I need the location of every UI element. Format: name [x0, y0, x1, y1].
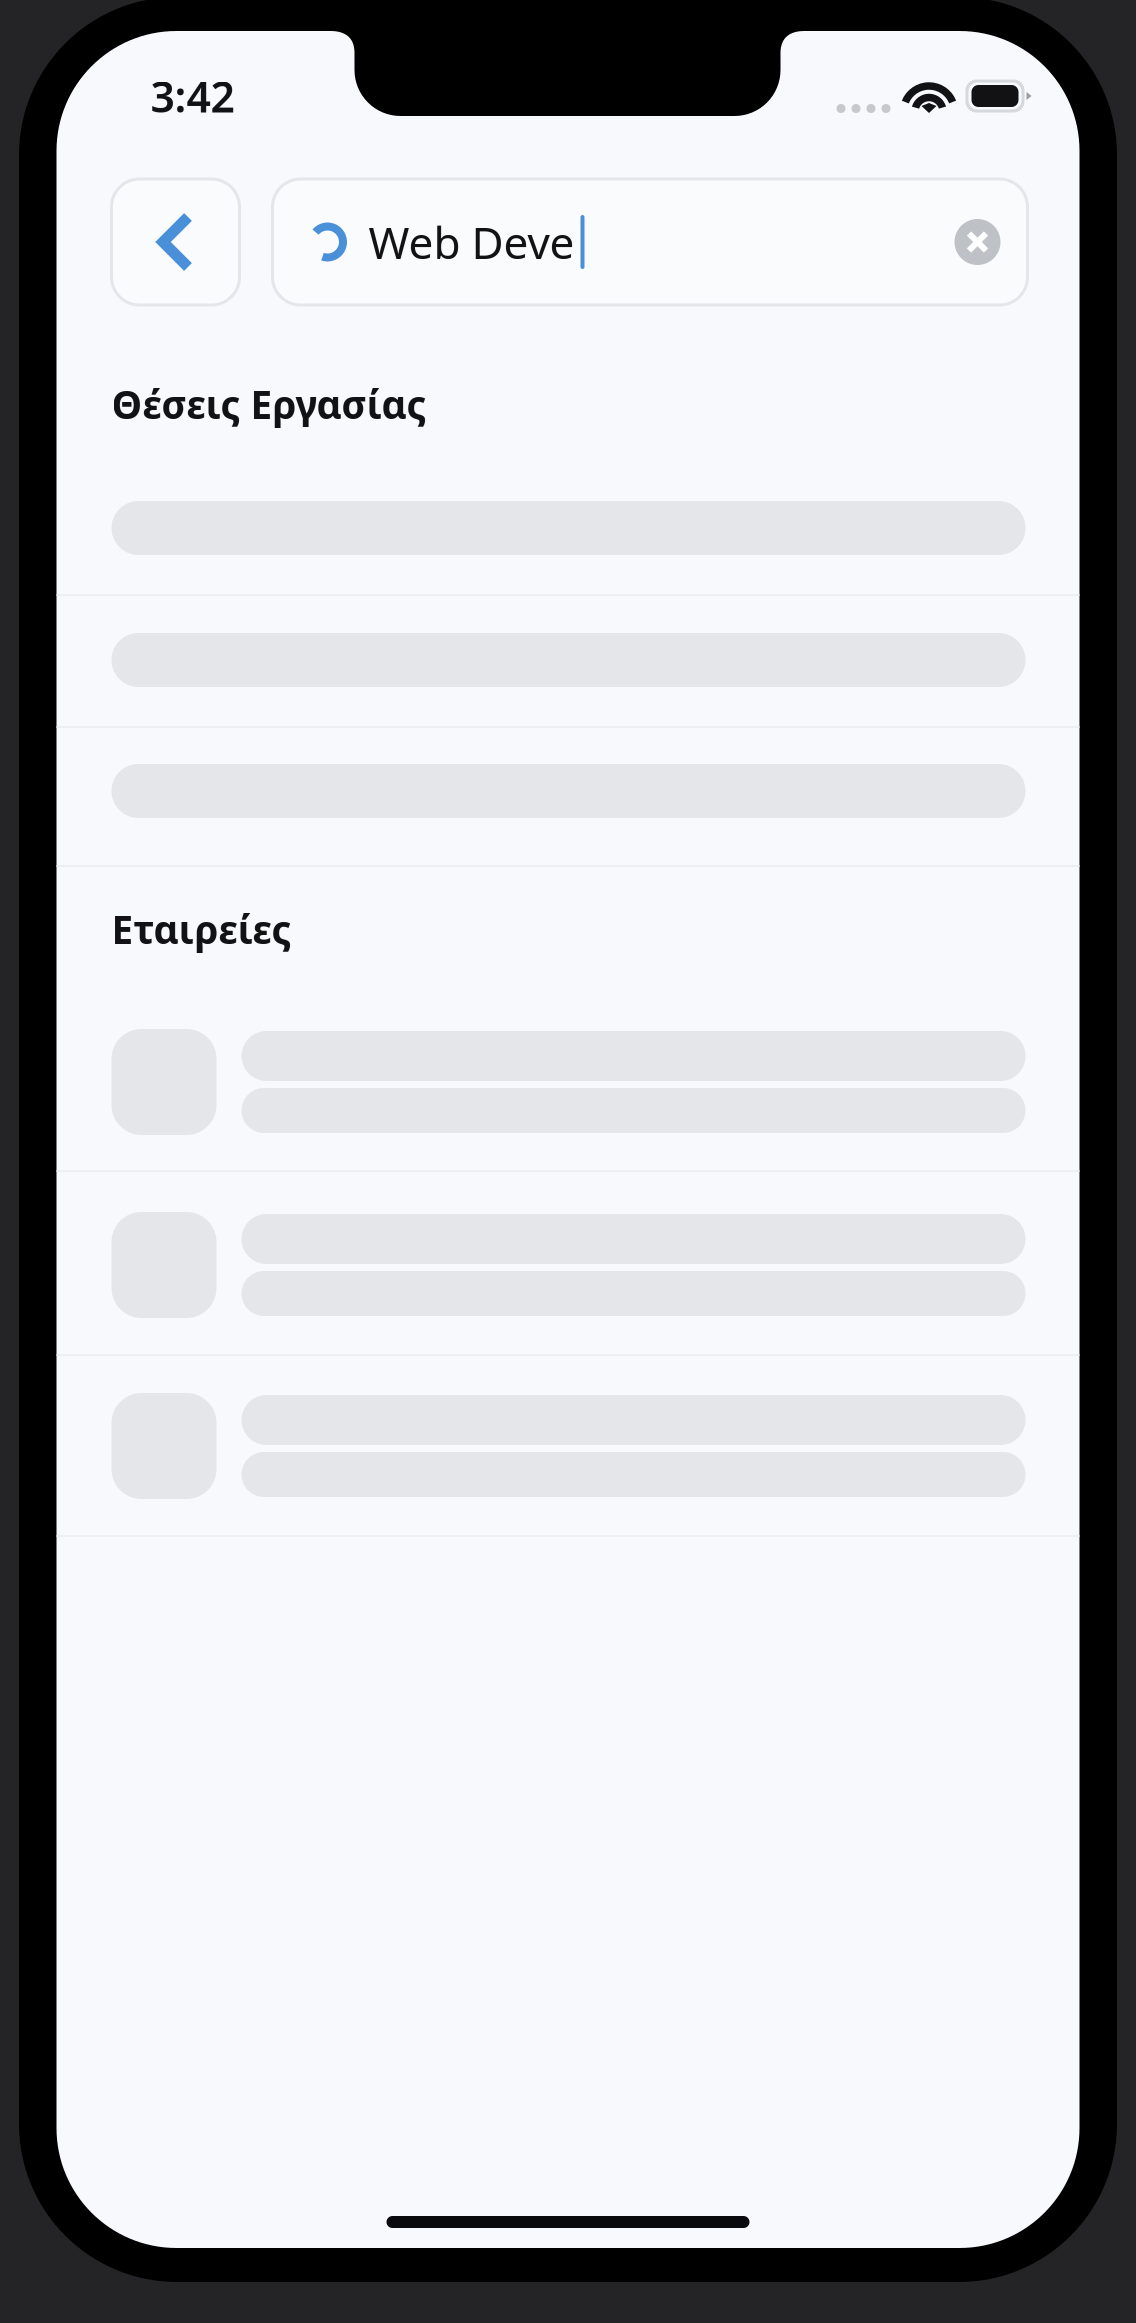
button[interactable] — [56, 764, 1079, 818]
staticText: Web Deve — [368, 213, 574, 271]
button[interactable]: Back — [111, 179, 239, 305]
button[interactable] — [56, 633, 1079, 687]
button[interactable]: Clear text — [927, 179, 1027, 305]
staticText: 3:42 — [150, 68, 234, 124]
staticText: Θέσεις Εργασίας — [111, 378, 426, 430]
button[interactable] — [56, 1393, 1079, 1499]
button[interactable] — [56, 1029, 1079, 1135]
button[interactable] — [56, 1212, 1079, 1318]
staticText: Εταιρείες — [111, 903, 291, 955]
button[interactable] — [56, 501, 1079, 555]
